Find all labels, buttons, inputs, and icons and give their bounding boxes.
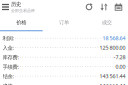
button[interactable]: 订单 [43, 14, 85, 31]
staticText: -7.28 [113, 54, 125, 61]
staticText: 0.00 [115, 63, 125, 70]
staticText: 订单 [59, 19, 69, 26]
button[interactable]: Sort [96, 0, 111, 13]
button[interactable]: Date range [111, 0, 125, 13]
button[interactable]: 成交 [85, 14, 128, 31]
staticText: 125 800.00 [99, 44, 125, 51]
staticText: 18 568.64 [102, 35, 125, 42]
staticText: 价格 [16, 19, 26, 26]
staticText: 成交 [102, 19, 112, 26]
staticText: 历史 [11, 1, 21, 8]
staticText: 入金: [2, 44, 13, 51]
staticText: 手续费: [2, 63, 18, 70]
button[interactable]: 价格 [0, 14, 43, 31]
staticText: 全部交易品种 [11, 8, 35, 13]
button[interactable]: Refresh [81, 0, 96, 13]
staticText: 143 561.44 [99, 73, 125, 80]
staticText: 143 561.44 [99, 82, 125, 85]
staticText: 库存费: [2, 54, 18, 61]
staticText: 净值: [2, 82, 13, 85]
staticText: 结余: [2, 73, 13, 80]
button[interactable]: Menu [0, 0, 11, 13]
staticText: 利润: [2, 35, 13, 42]
